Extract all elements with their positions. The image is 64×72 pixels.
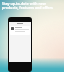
staticText: Stay up-to-date with new products, featu… xyxy=(2,1,62,10)
